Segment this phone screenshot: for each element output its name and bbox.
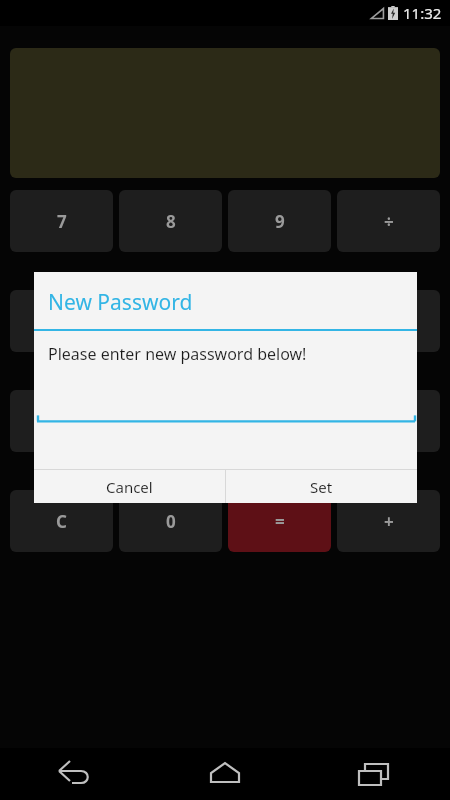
button[interactable]: 4 <box>10 290 113 352</box>
button[interactable]: 8 <box>119 190 222 252</box>
button[interactable]: Cancel <box>34 470 225 503</box>
staticText: 9 <box>275 210 285 233</box>
staticText: 6 <box>275 310 285 333</box>
button[interactable]: 1 <box>10 390 113 452</box>
staticText: 7 <box>57 210 67 233</box>
button[interactable]: Password input field <box>35 417 418 425</box>
button[interactable]: Set <box>226 470 417 503</box>
button[interactable]: Back <box>0 748 150 800</box>
button[interactable]: 6 <box>228 290 331 352</box>
button[interactable]: 5 <box>119 290 222 352</box>
staticText: ÷ <box>384 210 394 233</box>
staticText: 4 <box>57 310 67 333</box>
button[interactable]: Recent apps <box>300 748 450 800</box>
button[interactable]: − <box>337 390 440 452</box>
staticText: 5 <box>166 310 176 333</box>
staticText: Set <box>310 477 333 497</box>
button[interactable]: C <box>10 490 113 552</box>
staticText: 0 <box>166 510 176 533</box>
button[interactable]: ÷ <box>337 190 440 252</box>
button[interactable]: 7 <box>10 190 113 252</box>
staticText: 8 <box>166 210 176 233</box>
staticText: 2 <box>166 410 176 433</box>
staticText: × <box>384 310 394 333</box>
button[interactable]: 0 <box>119 490 222 552</box>
staticText: − <box>384 410 394 433</box>
button[interactable]: Home <box>150 748 300 800</box>
staticText: 11:32 <box>403 3 442 23</box>
button[interactable]: 9 <box>228 190 331 252</box>
staticText: + <box>384 510 394 533</box>
staticText: New Password <box>48 288 193 317</box>
staticText: = <box>275 510 285 533</box>
staticText: Please enter new password below! <box>48 343 307 365</box>
button[interactable]: + <box>337 490 440 552</box>
staticText: 1 <box>57 410 67 433</box>
staticText: 3 <box>275 410 285 433</box>
staticText: Cancel <box>106 477 153 497</box>
button[interactable]: 2 <box>119 390 222 452</box>
button[interactable]: = <box>228 490 331 552</box>
staticText: C <box>56 510 67 533</box>
button[interactable]: 3 <box>228 390 331 452</box>
button[interactable]: × <box>337 290 440 352</box>
